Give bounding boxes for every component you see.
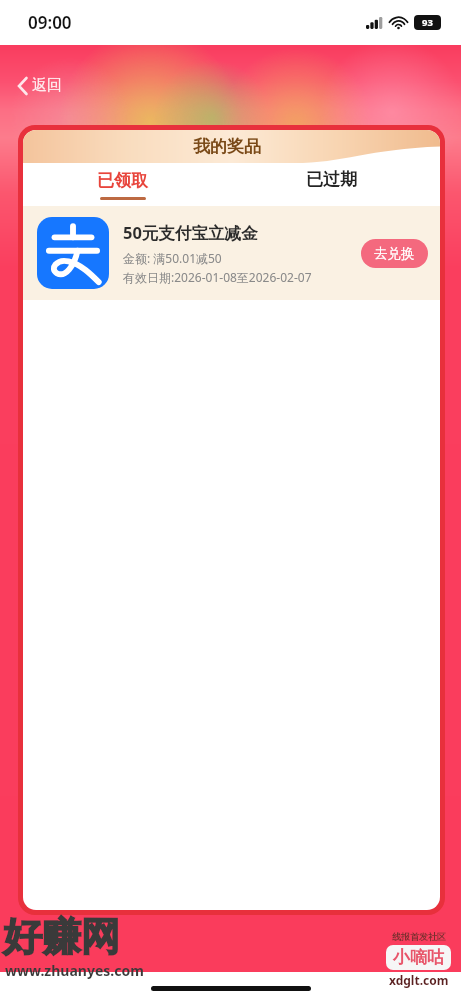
button[interactable]: 已过期 (296, 165, 367, 194)
staticText: 09:00 (28, 11, 72, 34)
staticText: 线报首发社区 (392, 931, 446, 942)
staticText: 小嘀咕 (393, 947, 444, 968)
button[interactable]: 50元支付宝立减金 (23, 206, 440, 300)
button[interactable]: 已领取 (87, 168, 158, 202)
staticText: 已领取 (97, 170, 148, 191)
staticText: 已过期 (306, 169, 357, 190)
button[interactable]: 返回 (12, 72, 68, 99)
staticText: www.zhuanyes.com (5, 961, 144, 980)
staticText: 我的奖品 (193, 136, 261, 157)
staticText: 50元支付宝立减金 (123, 221, 258, 244)
staticText: 好赚网 (3, 912, 120, 961)
staticText: xdglt.com (389, 972, 449, 988)
staticText: 金额: 满50.01减50 (123, 250, 222, 266)
staticText: 返回 (32, 76, 62, 95)
staticText: 93 (422, 16, 433, 29)
staticText: 有效日期:2026-01-08至2026-02-07 (123, 269, 312, 285)
button[interactable]: 去兑换 (361, 239, 428, 268)
staticText: 去兑换 (374, 245, 415, 262)
